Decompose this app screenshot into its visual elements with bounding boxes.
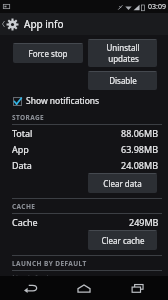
staticText: Cache [12,216,38,228]
staticText: Disable [109,75,137,86]
staticText: 24.08MB [121,159,159,171]
staticText: 88.06MB [121,127,159,139]
staticText: App [12,143,29,155]
staticText: CACHE [12,202,36,211]
staticText: No defaults set. [12,273,71,276]
staticText: LAUNCH BY DEFAULT [12,259,87,268]
staticText: Uninstall [106,42,140,53]
staticText: Force stop [28,48,68,59]
button[interactable]: Recent apps [115,276,161,300]
staticText: Clear data [103,178,142,189]
staticText: Total [12,127,33,139]
staticText: 249MB [129,216,159,228]
button[interactable]: Clear cache [88,230,157,250]
staticText: 63.98MB [121,143,159,155]
button[interactable]: Uninstall [88,39,157,67]
staticText: 03:09 [148,2,166,12]
staticText: Data [12,159,32,171]
staticText: Clear cache [101,235,145,246]
button[interactable]: Back [8,276,54,300]
button[interactable]: Show notifications [13,94,162,108]
staticText: Show notifications [26,95,100,107]
staticText: App info [24,17,64,31]
staticText: STORAGE [12,113,45,122]
button[interactable]: Force stop [13,43,83,63]
button[interactable]: Disable [88,71,157,90]
button[interactable]: Clear data [88,173,157,193]
button[interactable]: Navigate up [0,13,20,35]
button[interactable]: Home [61,276,107,300]
staticText: updates [108,53,139,64]
